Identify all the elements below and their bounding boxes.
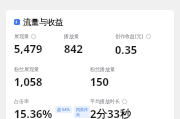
staticText: 1,058 [14,74,43,89]
staticText: 842 [64,41,83,56]
staticText: 2分33秒 [90,106,131,119]
staticText: 展现量 [14,33,29,39]
button[interactable]: 同类作品 [74,106,90,118]
staticText: 平均播放时长 [90,98,120,104]
staticText: 150 [90,74,109,89]
button[interactable]: 平均播放时长 [90,98,166,119]
button[interactable]: 展现量 [14,33,64,56]
button[interactable]: 播放量 [64,33,115,56]
button[interactable]: 粉丝展现量 [14,66,90,89]
staticText: 粉丝展现量 [14,66,39,72]
staticText: 流量与收益 [23,17,63,27]
other: 流量与收益图标 [14,19,20,25]
staticText: 粉丝播放量 [90,66,115,72]
button[interactable]: 占击率 [14,98,90,119]
staticText: 超 54% [57,107,70,112]
staticText: 0.35 [115,42,137,57]
button[interactable]: 超 54% [55,106,72,113]
staticText: 15.36% [14,106,53,119]
staticText: 创作收益(元) [115,33,144,40]
staticText: 5,479 [14,41,43,56]
staticText: 同类作品 [76,107,88,117]
staticText: 播放量 [64,33,79,39]
staticText: 占击率 [14,98,29,104]
button[interactable]: 创作收益(元) [115,33,166,57]
button[interactable]: 流量与收益图标 [14,17,63,27]
button[interactable]: 粉丝播放量 [90,66,166,89]
